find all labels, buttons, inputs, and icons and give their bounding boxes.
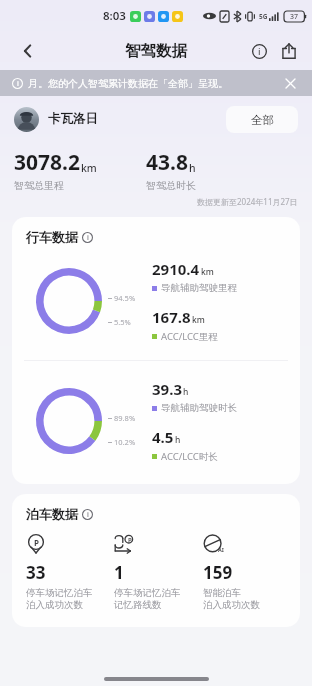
staticText: km xyxy=(81,161,97,175)
button[interactable]: Smart parking xyxy=(203,534,292,611)
staticText: 泊入成功次数 xyxy=(26,599,83,611)
staticText: 5G xyxy=(259,12,268,21)
button[interactable]: 泊车数据 xyxy=(12,494,300,627)
button[interactable]: 全部 xyxy=(226,106,298,133)
staticText: P xyxy=(128,536,132,544)
staticText: 全部 xyxy=(251,113,274,127)
staticText: 月。您的个人智驾累计数据在「全部」呈现。 xyxy=(28,77,228,90)
staticText: 8:03 xyxy=(103,8,126,24)
staticText: i xyxy=(17,79,19,89)
staticText: 卡瓦洛日 xyxy=(48,111,98,127)
button[interactable]: Memory route xyxy=(114,534,203,611)
staticText: 94.5% xyxy=(114,293,136,303)
other: Eye care xyxy=(203,11,216,21)
staticText: 43.8 xyxy=(146,148,188,177)
staticText: 10.2% xyxy=(114,437,136,447)
staticText: 停车场记忆泊车 xyxy=(114,587,181,599)
staticText: km xyxy=(192,314,205,326)
staticText: 导航辅助驾驶里程 xyxy=(161,282,237,294)
other: Memory parking xyxy=(26,534,46,554)
button[interactable]: 行车数据 xyxy=(12,217,300,484)
staticText: i xyxy=(87,510,89,520)
staticText: i xyxy=(87,233,89,243)
other: Memory route xyxy=(114,534,134,554)
staticText: 167.8 xyxy=(152,307,191,327)
staticText: 智驾数据 xyxy=(125,41,187,61)
staticText: h xyxy=(189,161,196,175)
staticText: 泊入成功次数 xyxy=(203,599,260,611)
staticText: 2910.4 xyxy=(152,259,200,279)
staticText: i xyxy=(258,45,261,58)
staticText: 1 xyxy=(114,561,124,584)
staticText: h xyxy=(175,434,181,446)
staticText: 导航辅助驾驶时长 xyxy=(161,402,237,414)
staticText: 记忆路线数 xyxy=(114,599,162,611)
staticText: 智驾总里程 xyxy=(14,179,64,192)
button[interactable]: Close xyxy=(280,73,300,93)
staticText: 停车场记忆泊车 xyxy=(26,587,93,599)
staticText: ACC/LCC里程 xyxy=(161,330,218,343)
other: Share xyxy=(281,43,297,59)
button[interactable]: Avatar xyxy=(14,107,39,132)
staticText: 行车数据 xyxy=(26,229,78,245)
staticText: 89.8% xyxy=(114,413,136,423)
staticText: 智驾总时长 xyxy=(146,179,196,192)
staticText: P xyxy=(34,537,39,548)
staticText: km xyxy=(201,266,214,278)
staticText: 数据更新至2024年11月27日 xyxy=(197,196,298,207)
staticText: 泊车数据 xyxy=(26,506,78,522)
staticText: ACC/LCC时长 xyxy=(161,450,218,463)
button[interactable]: Memory parking xyxy=(26,534,114,611)
staticText: 159 xyxy=(203,561,233,584)
staticText: 4.5 xyxy=(152,427,174,447)
staticText: AI xyxy=(218,546,224,553)
button[interactable]: Info xyxy=(244,36,274,66)
staticText: 33 xyxy=(26,561,46,584)
staticText: 3078.2 xyxy=(14,148,80,177)
staticText: 37 xyxy=(290,12,299,22)
staticText: h xyxy=(183,386,189,398)
staticText: 5.5% xyxy=(114,317,131,327)
staticText: 智能泊车 xyxy=(203,587,241,599)
button[interactable]: Back xyxy=(12,35,44,67)
button[interactable]: Share xyxy=(274,36,304,66)
other: Smart parking xyxy=(203,534,223,554)
staticText: 39.3 xyxy=(152,379,182,399)
button[interactable]: i xyxy=(0,70,312,96)
